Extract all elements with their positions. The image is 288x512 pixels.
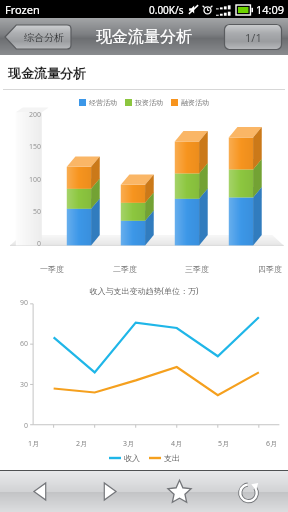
- staticText: 收入与支出变动趋势(单位：万): [0, 285, 288, 296]
- staticText: 2月: [76, 439, 88, 449]
- button[interactable]: 1/1: [224, 24, 282, 50]
- staticText: 一季度: [40, 264, 64, 274]
- staticText: 200: [29, 110, 42, 120]
- staticText: 三季度: [185, 264, 209, 274]
- staticText: 0.00K/s: [149, 3, 184, 17]
- staticText: 现金流量分析: [8, 65, 86, 81]
- staticText: 60: [20, 339, 29, 349]
- staticText: 四季度: [258, 264, 282, 274]
- staticText: 二季度: [113, 264, 137, 274]
- staticText: 90: [20, 298, 29, 308]
- staticText: 30: [20, 380, 29, 390]
- staticText: 50: [33, 207, 42, 217]
- staticText: 融资活动: [181, 98, 209, 107]
- staticText: 1月: [28, 439, 40, 449]
- staticText: 100: [29, 175, 42, 185]
- staticText: 支出: [164, 453, 180, 463]
- staticText: 5月: [218, 439, 230, 449]
- staticText: 投资活动: [135, 98, 163, 107]
- button[interactable]: Forward: [79, 471, 139, 512]
- button[interactable]: Refresh: [218, 471, 278, 512]
- button[interactable]: 综合分析: [4, 24, 72, 50]
- button[interactable]: Back: [10, 471, 70, 512]
- staticText: 现金流量分析: [96, 27, 192, 47]
- staticText: 综合分析: [24, 31, 64, 44]
- staticText: 150: [29, 142, 42, 152]
- staticText: 14:09: [256, 2, 285, 17]
- staticText: 收入: [124, 453, 140, 463]
- staticText: 0: [37, 239, 42, 249]
- button[interactable]: Bookmark: [149, 471, 209, 512]
- staticText: 0: [24, 421, 29, 431]
- staticText: 1/1: [245, 30, 262, 45]
- staticText: 经营活动: [89, 98, 117, 107]
- staticText: 6月: [266, 439, 278, 449]
- staticText: Frozen: [5, 2, 40, 17]
- staticText: 3月: [123, 439, 135, 449]
- staticText: 4月: [171, 439, 183, 449]
